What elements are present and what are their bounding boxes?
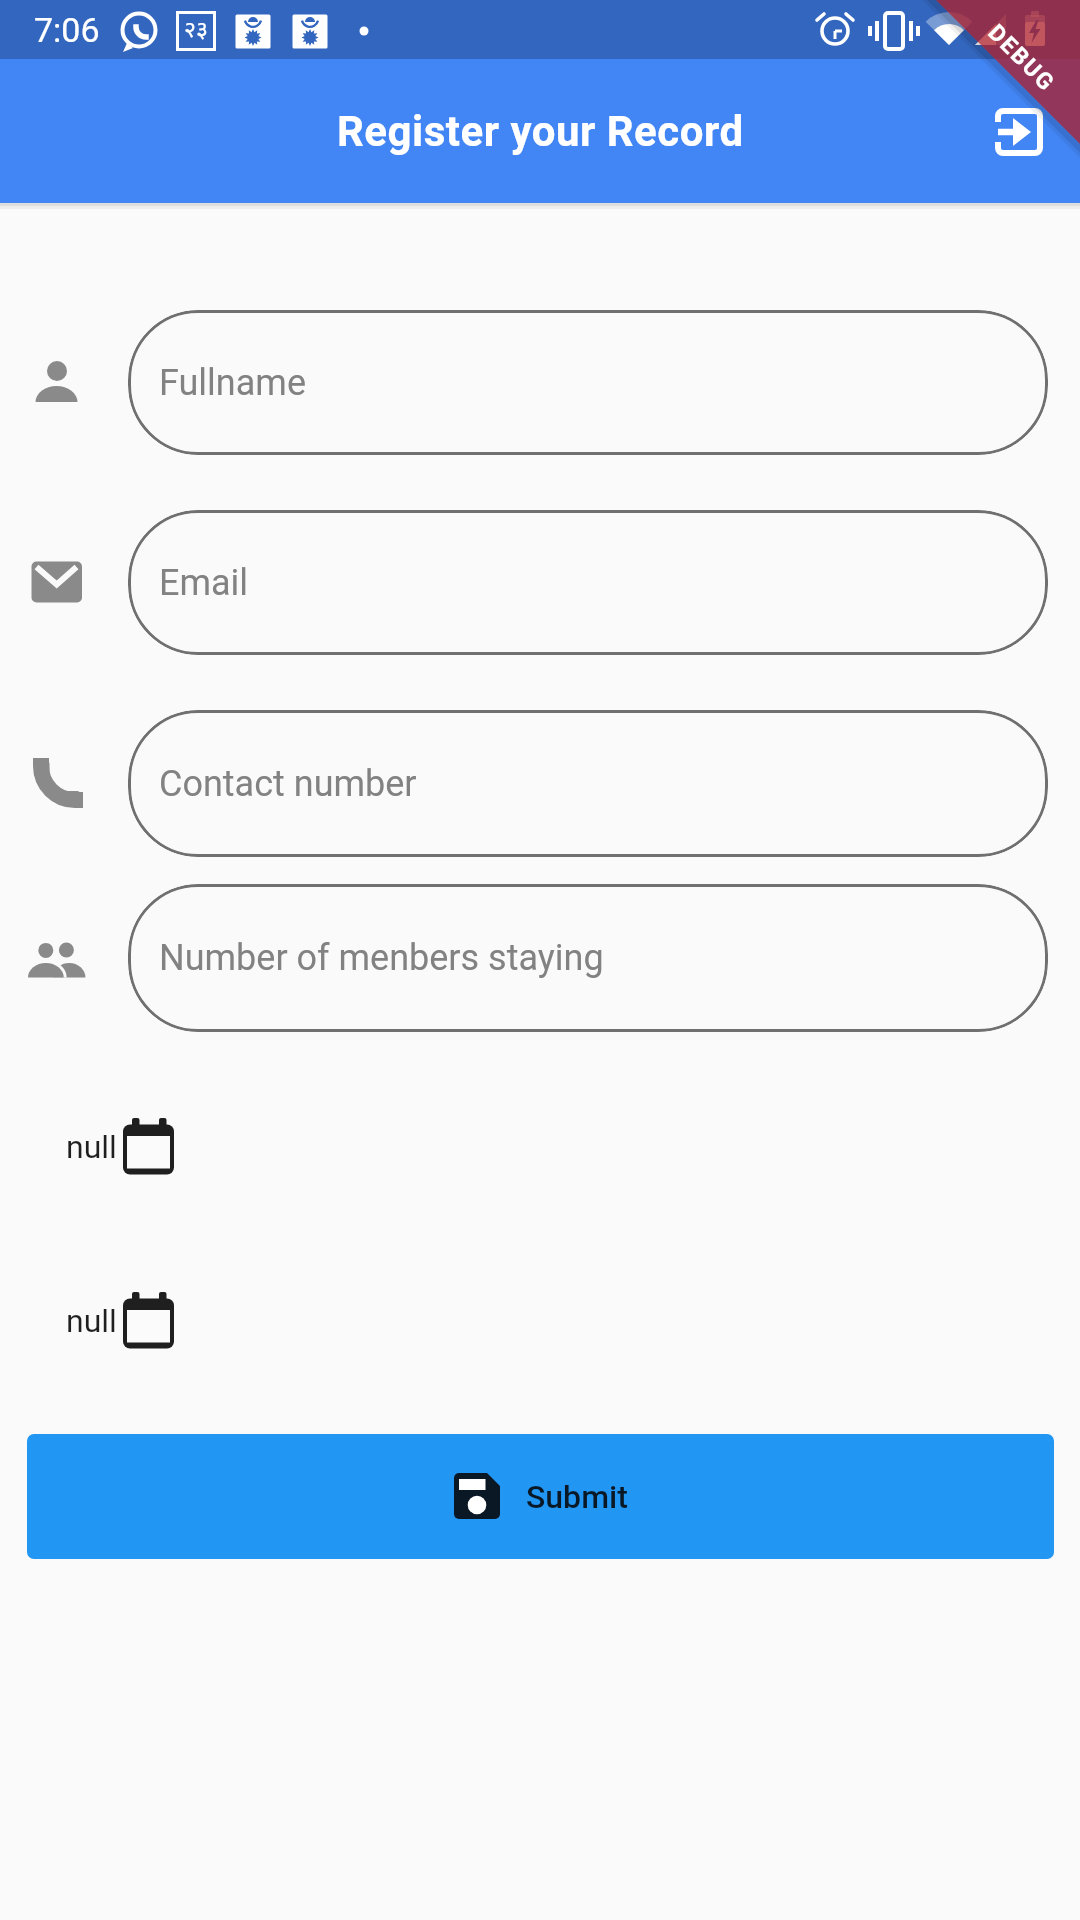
staticText: DEBUG — [982, 19, 1061, 98]
button[interactable]: null — [66, 1292, 176, 1349]
staticText: Number of menbers staying — [159, 937, 604, 979]
staticText: null — [66, 1128, 117, 1166]
staticText: २३ — [184, 16, 208, 46]
button[interactable]: Fullname — [128, 310, 1048, 455]
button[interactable]: Contact number — [128, 710, 1048, 857]
button[interactable] — [984, 97, 1054, 167]
staticText: null — [66, 1302, 117, 1340]
staticText: 7:06 — [34, 10, 100, 50]
staticText: Register your Record — [337, 107, 744, 156]
staticText: Fullname — [159, 362, 306, 404]
staticText: Email — [159, 562, 249, 604]
button[interactable]: Number of menbers staying — [128, 884, 1048, 1032]
button[interactable]: Email — [128, 510, 1048, 655]
staticText: Contact number — [159, 763, 417, 805]
button[interactable]: null — [66, 1118, 176, 1175]
button[interactable]: Submit — [27, 1434, 1054, 1559]
staticText: Submit — [526, 1478, 628, 1516]
